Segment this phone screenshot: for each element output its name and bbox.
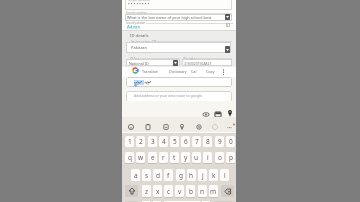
staticText: Security answer [126,21,146,25]
button[interactable]: j [198,169,207,181]
staticText: l [224,171,226,180]
button[interactable]: 7 [192,136,201,147]
button[interactable]: s [142,169,151,181]
button[interactable]: h [187,169,196,181]
button[interactable] [228,110,232,117]
staticText: ? [227,23,229,27]
button[interactable]: Dictionary [169,69,187,74]
button[interactable]: x [153,185,162,197]
button[interactable] [196,124,202,130]
button[interactable]: u [192,152,201,163]
button[interactable]: 6 [181,136,190,147]
button[interactable] [125,14,232,21]
button[interactable]: i [203,152,212,163]
button[interactable]: n [198,185,207,197]
button[interactable]: f [164,169,173,181]
button[interactable]: l [220,169,229,181]
staticText: o [218,153,222,162]
button[interactable] [182,59,232,66]
staticText: e [151,153,155,162]
staticText: ID Type [130,57,140,61]
staticText: g [179,171,183,180]
staticText: a [134,171,138,180]
button[interactable]: m [209,185,218,197]
button[interactable]: a [131,169,140,181]
staticText: Re-type password [128,0,150,2]
staticText: Add address or your area route to google [134,93,202,98]
button[interactable] [125,185,138,197]
staticText: p [229,153,233,162]
staticText: 5 [173,137,177,146]
button[interactable] [179,124,185,130]
staticText: b [189,187,193,196]
button[interactable] [126,42,231,53]
staticText: y [184,153,188,162]
button[interactable]: 3 [148,136,157,147]
button[interactable]: 5 [170,136,179,147]
button[interactable]: b [186,185,195,197]
button[interactable]: w [136,152,145,163]
button[interactable]: o [215,152,224,163]
button[interactable]: q [125,152,134,163]
staticText: 7 [195,137,199,146]
staticText: f [167,171,170,180]
button[interactable] [128,124,134,130]
button[interactable]: 4 [159,136,168,147]
staticText: q [128,153,132,162]
button[interactable]: Cal [191,69,197,74]
button[interactable]: k [209,169,218,181]
button[interactable] [212,124,218,130]
button[interactable]: c [164,185,173,197]
staticText: r [162,153,165,162]
staticText: j [202,171,204,180]
button[interactable]: t [170,152,179,163]
button[interactable] [163,124,169,130]
staticText: National ID [129,61,149,66]
button[interactable]: 9 [215,136,224,147]
staticText: 2 [139,137,143,146]
staticText: ID number [183,57,197,61]
button[interactable]: y [181,152,190,163]
button[interactable]: 0 [226,136,235,147]
staticText: x [156,187,160,196]
button[interactable]: v [175,185,184,197]
button[interactable] [225,46,230,53]
staticText: m [210,187,217,196]
button[interactable] [227,122,235,130]
button[interactable] [215,112,221,117]
staticText: 3160020156A827 [184,61,212,66]
button[interactable]: ? [226,23,230,27]
staticText: Security question [126,11,148,15]
button[interactable] [126,59,180,66]
staticText: 0 [229,137,233,146]
staticText: 3 [151,137,155,146]
staticText: • • • • • • • • [128,1,150,7]
button[interactable]: z [142,185,151,197]
staticText: v [178,187,182,196]
staticText: i [207,153,209,162]
staticText: n [200,187,205,196]
button[interactable]: 8 [203,136,212,147]
button[interactable] [225,14,230,20]
staticText: z [145,187,149,196]
button[interactable]: Copy [206,69,215,74]
staticText: Issuing country of ID [131,40,157,44]
button[interactable]: g [176,169,185,181]
button[interactable] [126,91,232,102]
button[interactable] [223,69,224,75]
button[interactable]: r [159,152,168,163]
button[interactable] [221,185,234,197]
button[interactable]: Translate [142,69,158,74]
button[interactable] [126,77,232,87]
staticText: u [194,153,199,162]
button[interactable] [173,60,178,66]
button[interactable]: 2 [136,136,145,147]
staticText: d [156,171,160,180]
button[interactable]: 1 [125,136,134,147]
button[interactable]: d [153,169,162,181]
button[interactable] [203,112,209,117]
button[interactable] [145,124,151,130]
button[interactable]: e [148,152,157,163]
button[interactable]: p [226,152,235,163]
staticText: c [167,187,171,196]
